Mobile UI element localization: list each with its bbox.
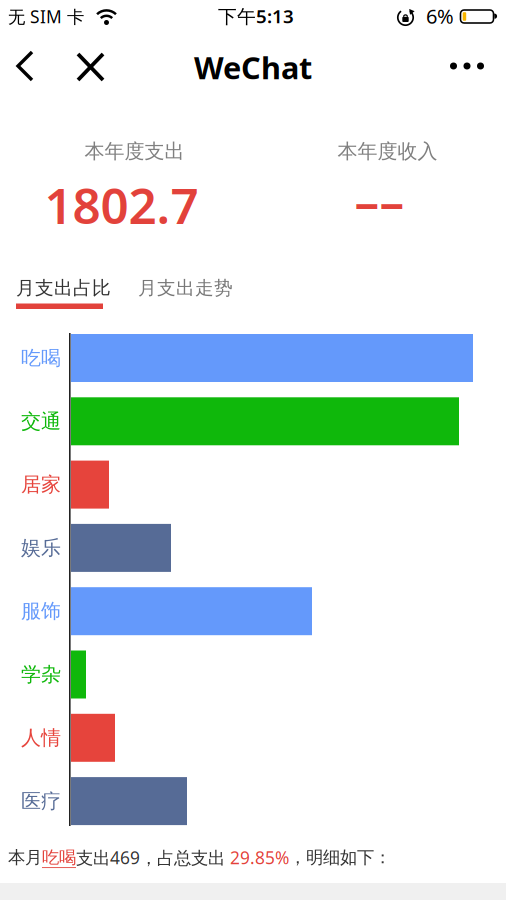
staticText: 娱乐: [21, 536, 61, 560]
staticText: 月支出走势: [138, 276, 233, 299]
button[interactable]: 月支出占比: [16, 276, 111, 309]
staticText: ，明细如下：: [289, 847, 391, 868]
button[interactable]: More: [436, 47, 498, 85]
staticText: ––: [354, 168, 404, 233]
staticText: 6%: [426, 3, 454, 29]
staticText: 吃喝: [42, 847, 76, 868]
staticText: 本年度支出: [84, 139, 184, 164]
button[interactable]: Close: [68, 47, 113, 87]
staticText: 支出469，占总支出: [76, 846, 230, 869]
button[interactable]: 吃喝: [42, 847, 76, 868]
staticText: 学杂: [21, 662, 61, 687]
staticText: 交通: [21, 409, 61, 434]
staticText: 月支出占比: [16, 276, 111, 299]
staticText: 居家: [21, 472, 61, 497]
staticText: 下午5:13: [218, 4, 294, 28]
staticText: WeChat: [194, 47, 312, 88]
staticText: 医疗: [21, 789, 61, 813]
staticText: 无 SIM 卡: [8, 5, 84, 28]
staticText: 29.85%: [230, 846, 289, 869]
staticText: 服饰: [21, 599, 61, 623]
button[interactable]: 月支出走势: [138, 276, 233, 300]
staticText: 1802.7: [44, 172, 198, 237]
staticText: 本年度收入: [337, 139, 437, 164]
staticText: 吃喝: [21, 346, 61, 370]
button[interactable]: Back: [6, 46, 50, 86]
staticText: 人情: [21, 725, 61, 750]
staticText: 本月: [8, 847, 42, 868]
